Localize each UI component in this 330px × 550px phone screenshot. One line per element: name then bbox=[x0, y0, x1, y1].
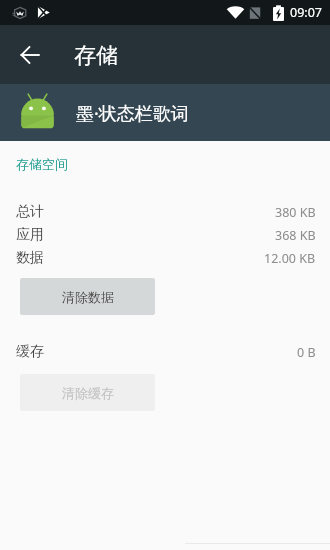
staticText: 缓存 bbox=[16, 343, 44, 361]
staticText: 380 KB bbox=[275, 204, 316, 221]
button[interactable]: 墨·状态栏歌词 bbox=[0, 84, 330, 141]
staticText: 存储空间 bbox=[16, 156, 68, 172]
staticText: 09:07 bbox=[290, 4, 322, 21]
staticText: 应用 bbox=[16, 226, 44, 244]
staticText: 墨·状态栏歌词 bbox=[76, 101, 189, 126]
staticText: 12.00 KB bbox=[264, 250, 316, 267]
staticText: 0 B bbox=[297, 344, 316, 361]
staticText: 368 KB bbox=[275, 227, 316, 244]
staticText: 总计 bbox=[16, 203, 44, 221]
staticText: 存储 bbox=[74, 42, 118, 70]
staticText: 清除数据 bbox=[62, 289, 114, 305]
button[interactable]: 清除缓存 bbox=[20, 374, 155, 411]
staticText: 数据 bbox=[16, 249, 44, 267]
button[interactable]: Back bbox=[12, 37, 48, 73]
button[interactable]: 清除数据 bbox=[20, 278, 155, 315]
staticText: 清除缓存 bbox=[62, 385, 114, 401]
